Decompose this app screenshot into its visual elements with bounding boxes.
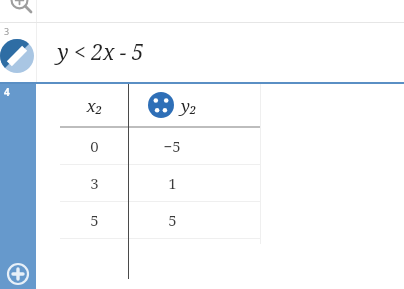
button[interactable]: 4 [0,84,36,289]
staticText: 1 [168,173,177,193]
staticText: −5 [163,136,181,156]
staticText: 5 [90,210,99,230]
button[interactable]: 0 [60,128,260,164]
staticText: 3 [90,173,99,193]
other: Expression tool [0,39,34,73]
staticText: 4 [4,85,10,99]
button[interactable]: 3 [60,165,260,201]
button[interactable]: Zoom in [6,0,36,15]
staticText: 0 [90,136,99,156]
button[interactable]: Table settings [148,92,174,118]
staticText: x₂ [86,94,103,117]
button[interactable]: 5 [60,202,260,238]
staticText: y₂ [181,94,197,117]
button[interactable]: Add expression [7,263,29,285]
staticText: 5 [168,210,177,230]
staticText: 3 [4,25,10,37]
staticText: y < 2x − 5 [57,38,144,67]
button[interactable]: 3 [0,23,404,82]
